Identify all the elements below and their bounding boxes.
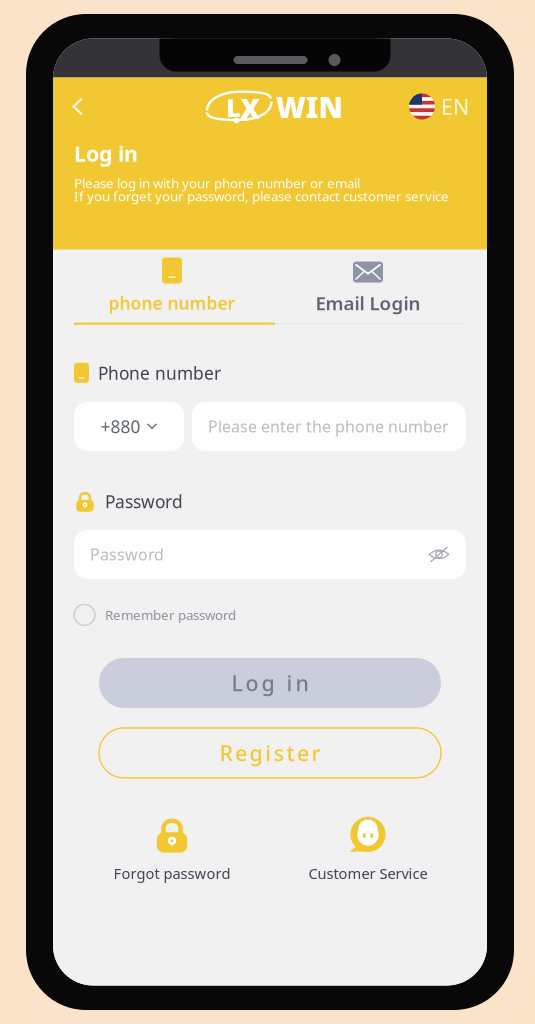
- button[interactable]: Register: [99, 728, 441, 778]
- staticText: Forgot password: [113, 864, 230, 883]
- button[interactable]: Phone number field: [192, 402, 466, 451]
- button[interactable]: phone number: [74, 249, 270, 322]
- button[interactable]: Country code +880: [74, 402, 184, 451]
- staticText: phone number: [108, 291, 235, 314]
- staticText: L: [226, 91, 241, 124]
- staticText: Remember password: [105, 606, 236, 624]
- staticText: X: [240, 89, 260, 127]
- button[interactable]: Log in: [99, 658, 441, 708]
- button[interactable]: Password field: [74, 530, 466, 579]
- button[interactable]: Customer Service: [270, 816, 466, 881]
- staticText: WIN: [275, 87, 342, 126]
- staticText: Email Login: [315, 291, 420, 315]
- staticText: Password: [90, 544, 164, 565]
- staticText: EN: [441, 92, 469, 121]
- staticText: +880: [100, 415, 140, 438]
- staticText: If you forget your password, please cont…: [74, 187, 449, 205]
- staticText: Phone number: [98, 361, 221, 384]
- staticText: Password: [105, 490, 183, 513]
- staticText: Customer Service: [308, 864, 427, 883]
- staticText: Log in: [74, 139, 138, 168]
- staticText: Please log in with your phone number or …: [74, 174, 360, 192]
- staticText: Register: [219, 739, 321, 767]
- button[interactable]: Email Login: [270, 249, 466, 322]
- button[interactable]: Back: [60, 86, 96, 126]
- button[interactable]: Forgot password: [74, 816, 270, 881]
- staticText: Log in: [231, 669, 308, 697]
- staticText: Please enter the phone number: [208, 416, 449, 437]
- button[interactable]: Remember password: [74, 604, 236, 626]
- button[interactable]: Language English: [409, 85, 469, 128]
